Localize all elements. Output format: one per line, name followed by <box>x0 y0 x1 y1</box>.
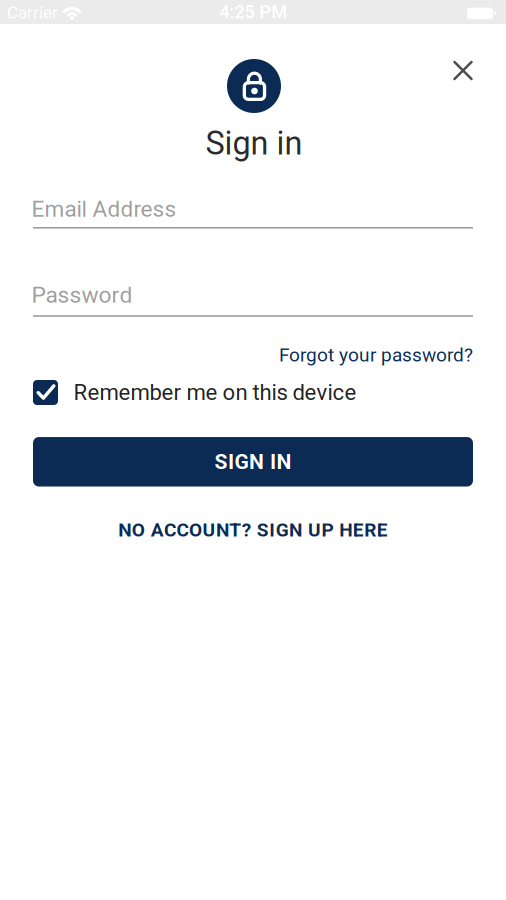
button[interactable]: SIGN IN <box>33 437 473 487</box>
staticText: Carrier <box>7 2 58 23</box>
button[interactable]: Forgot your password? <box>279 344 473 366</box>
staticText: Sign in <box>205 124 302 162</box>
button[interactable] <box>451 58 475 82</box>
button[interactable]: NO ACCOUNT? SIGN UP HERE <box>118 519 388 541</box>
staticText: Password <box>31 282 132 308</box>
staticText: NO ACCOUNT? SIGN UP HERE <box>118 519 388 541</box>
staticText: Forgot your password? <box>279 344 473 366</box>
staticText: 4:25 PM <box>219 1 287 23</box>
button[interactable]: Remember me on this device <box>33 379 356 405</box>
staticText: SIGN IN <box>214 449 291 474</box>
staticText: Email Address <box>31 196 176 222</box>
staticText: Remember me on this device <box>73 379 356 405</box>
